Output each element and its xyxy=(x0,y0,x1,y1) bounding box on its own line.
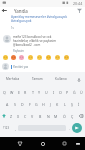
button[interactable]: ?123 xyxy=(0,122,13,134)
button[interactable]: Z xyxy=(8,110,15,122)
staticText: H xyxy=(42,102,45,107)
button[interactable]: Emoji xyxy=(26,54,35,61)
staticText: 20:44 xyxy=(73,1,83,6)
staticText: Kullanıcı xyxy=(55,77,68,81)
staticText: T xyxy=(32,90,34,95)
button[interactable]: İ xyxy=(75,98,82,110)
button[interactable]: Merhaba xyxy=(0,72,25,86)
button[interactable]: Recents xyxy=(60,139,69,148)
button[interactable]: Kullanıcı xyxy=(49,72,73,86)
staticText: #yanitlay memeseverler #viralgucuyok xyxy=(11,15,68,19)
staticText: @bonulbool2 .com xyxy=(13,43,41,47)
button[interactable]: Hide keyboard xyxy=(73,139,82,148)
staticText: Tamam xyxy=(32,77,43,81)
button[interactable]: Voice input xyxy=(75,76,82,83)
button[interactable]: Emoji xyxy=(1,54,9,61)
button[interactable]: Send xyxy=(72,123,82,133)
staticText: V xyxy=(31,114,34,119)
button[interactable]: , xyxy=(13,122,18,134)
staticText: Y xyxy=(38,90,41,95)
button[interactable]: Emoji xyxy=(62,54,71,61)
staticText: G xyxy=(35,102,38,107)
button[interactable]: Home xyxy=(38,139,47,148)
button[interactable]: Emoji xyxy=(44,54,53,61)
staticText: P xyxy=(66,90,69,95)
button[interactable]: Y xyxy=(36,86,43,98)
button[interactable]: Ç xyxy=(68,110,76,122)
staticText: M xyxy=(54,114,58,119)
button[interactable]: Tamam xyxy=(25,72,49,86)
button[interactable]: Q xyxy=(0,86,8,98)
button[interactable]: L xyxy=(61,98,68,110)
button[interactable]: Emoji xyxy=(53,54,62,61)
staticText: Ş xyxy=(71,102,73,107)
staticText: 1s xyxy=(11,26,14,30)
staticText: #viralgucuyok xyxy=(11,19,32,23)
button[interactable]: R xyxy=(22,86,29,98)
staticText: U xyxy=(45,90,48,95)
button[interactable]: X xyxy=(15,110,22,122)
staticText: L xyxy=(64,102,66,107)
button[interactable]: Back xyxy=(15,139,24,148)
staticText: B xyxy=(39,114,42,119)
button[interactable]: Ü xyxy=(78,86,85,98)
staticText: İ xyxy=(78,102,80,107)
staticText: N xyxy=(47,114,50,119)
staticText: D xyxy=(21,102,24,107)
button[interactable]: A xyxy=(3,98,11,110)
staticText: Ö xyxy=(63,114,66,119)
staticText: J xyxy=(50,102,51,107)
button[interactable]: W xyxy=(8,86,15,98)
button[interactable]: J xyxy=(47,98,54,110)
button[interactable]: Ş xyxy=(68,98,75,110)
button[interactable]: M xyxy=(52,110,60,122)
staticText: , xyxy=(15,126,16,131)
button[interactable]: Shift xyxy=(0,110,8,122)
button[interactable]: C xyxy=(22,110,29,122)
staticText: Q xyxy=(3,90,6,95)
staticText: Ü xyxy=(80,90,83,95)
button[interactable]: T xyxy=(29,86,36,98)
staticText: K xyxy=(56,102,59,107)
button[interactable]: Ğ xyxy=(71,86,78,98)
staticText: Yanıtla xyxy=(14,8,28,14)
button[interactable]: Emoji xyxy=(17,54,26,61)
button[interactable]: Backspace xyxy=(76,110,85,122)
staticText: ?123 xyxy=(3,126,10,130)
button[interactable]: E xyxy=(15,86,22,98)
staticText: R xyxy=(24,90,27,95)
staticText: S xyxy=(14,102,16,107)
button[interactable]: Back xyxy=(1,7,8,14)
staticText: Yanitini yaz xyxy=(13,65,29,69)
staticText: O xyxy=(59,90,62,95)
staticText: Merhaba xyxy=(6,77,20,81)
button[interactable]: D xyxy=(19,98,26,110)
button[interactable]: K xyxy=(54,98,61,110)
button[interactable]: P xyxy=(64,86,71,98)
button[interactable]: H xyxy=(40,98,47,110)
button[interactable]: U xyxy=(43,86,50,98)
button[interactable]: Ö xyxy=(60,110,68,122)
button[interactable]: S xyxy=(11,98,19,110)
staticText: X xyxy=(17,114,20,119)
button[interactable]: Send xyxy=(76,7,83,14)
staticText: C xyxy=(24,114,27,119)
button[interactable]: Emoji xyxy=(35,54,44,61)
staticText: W xyxy=(10,90,14,95)
button[interactable]: F xyxy=(26,98,33,110)
staticText: Ç xyxy=(71,114,74,119)
button[interactable]: B xyxy=(36,110,44,122)
button[interactable]: I xyxy=(50,86,57,98)
staticText: I xyxy=(53,90,55,95)
staticText: . xyxy=(69,126,70,131)
staticText: A xyxy=(6,102,9,107)
button[interactable]: N xyxy=(44,110,52,122)
button[interactable]: O xyxy=(57,86,64,98)
staticText: Ğ xyxy=(73,90,76,95)
button[interactable]: Emoji xyxy=(9,54,17,61)
button[interactable]: V xyxy=(29,110,36,122)
staticText: Paylasim xyxy=(13,49,24,53)
button[interactable]: G xyxy=(33,98,40,110)
